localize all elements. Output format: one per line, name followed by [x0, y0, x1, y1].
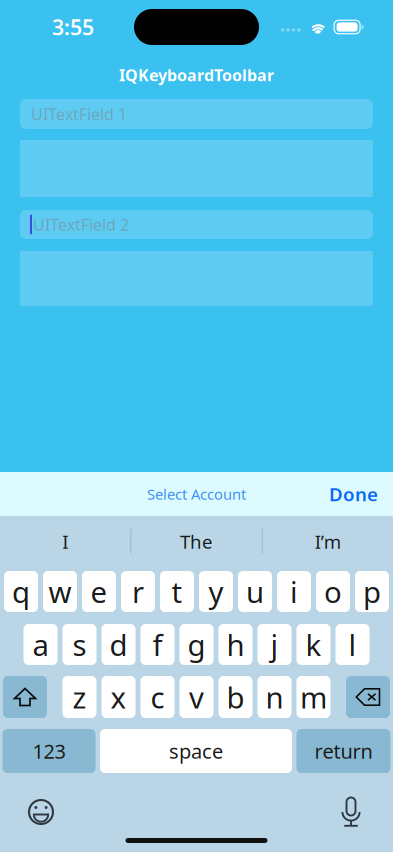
staticText: t — [171, 572, 182, 611]
button[interactable]: Emoji — [24, 795, 58, 829]
staticText: UITextField 2 — [33, 214, 129, 235]
button[interactable]: z — [62, 676, 96, 718]
staticText: The — [180, 529, 213, 554]
staticText: Select Account — [147, 484, 246, 504]
button[interactable]: Delete — [346, 676, 390, 718]
staticText: c — [150, 677, 164, 716]
button[interactable]: t — [160, 571, 194, 612]
button[interactable]: p — [355, 571, 389, 612]
staticText: h — [226, 625, 244, 664]
button[interactable]: d — [101, 624, 135, 665]
staticText: u — [246, 572, 264, 611]
button[interactable]: j — [257, 624, 291, 665]
staticText: r — [132, 572, 144, 611]
staticText: n — [265, 677, 283, 716]
button[interactable]: o — [316, 571, 350, 612]
button[interactable]: k — [296, 624, 330, 665]
button[interactable]: w — [43, 571, 77, 612]
button[interactable]: x — [101, 676, 135, 718]
staticText: 3:55 — [52, 13, 94, 41]
staticText: f — [152, 625, 162, 664]
staticText: s — [72, 625, 86, 664]
button[interactable]: y — [199, 571, 233, 612]
button[interactable]: Dictation — [334, 795, 372, 829]
button[interactable]: c — [140, 676, 174, 718]
button[interactable]: f — [140, 624, 174, 665]
staticText: g — [187, 625, 205, 664]
button[interactable]: I — [0, 516, 130, 558]
staticText: space — [169, 738, 223, 764]
button[interactable]: l — [335, 624, 369, 665]
button[interactable]: return — [296, 729, 390, 773]
button[interactable]: Done — [317, 472, 390, 516]
staticText: p — [363, 572, 381, 611]
staticText: x — [110, 677, 126, 716]
button[interactable]: h — [218, 624, 252, 665]
staticText: UITextField 1 — [31, 103, 127, 125]
staticText: y — [208, 572, 223, 611]
staticText: j — [270, 625, 278, 664]
button[interactable]: g — [179, 624, 213, 665]
staticText: 123 — [32, 738, 65, 764]
button[interactable]: The — [131, 516, 262, 558]
button[interactable]: m — [296, 676, 330, 718]
staticText: q — [12, 572, 30, 611]
button[interactable]: Shift — [3, 676, 47, 718]
staticText: Done — [329, 482, 378, 506]
button[interactable]: e — [82, 571, 116, 612]
staticText: e — [90, 572, 107, 611]
button[interactable]: r — [121, 571, 155, 612]
staticText: w — [48, 572, 71, 611]
button[interactable]: 123 — [2, 729, 95, 773]
button[interactable]: i — [277, 571, 311, 612]
staticText: i — [290, 572, 298, 611]
button[interactable]: a — [23, 624, 57, 665]
button[interactable]: space — [100, 729, 292, 773]
staticText: IQKeyboardToolbar — [119, 64, 274, 86]
button[interactable]: n — [257, 676, 291, 718]
staticText: z — [72, 677, 86, 716]
button[interactable]: Select Account — [135, 472, 258, 516]
staticText: I’m — [315, 529, 341, 554]
staticText: l — [348, 625, 356, 664]
staticText: k — [305, 625, 321, 664]
staticText: o — [324, 572, 342, 611]
staticText: a — [32, 625, 48, 664]
button[interactable]: b — [218, 676, 252, 718]
button[interactable]: v — [179, 676, 213, 718]
staticText: I — [62, 529, 68, 554]
staticText: return — [314, 738, 372, 764]
button[interactable]: s — [62, 624, 96, 665]
staticText: v — [189, 677, 204, 716]
staticText: d — [109, 625, 127, 664]
staticText: m — [300, 677, 327, 716]
staticText: b — [226, 677, 244, 716]
button[interactable]: I’m — [263, 516, 393, 558]
button[interactable]: q — [4, 571, 38, 612]
button[interactable]: u — [238, 571, 272, 612]
